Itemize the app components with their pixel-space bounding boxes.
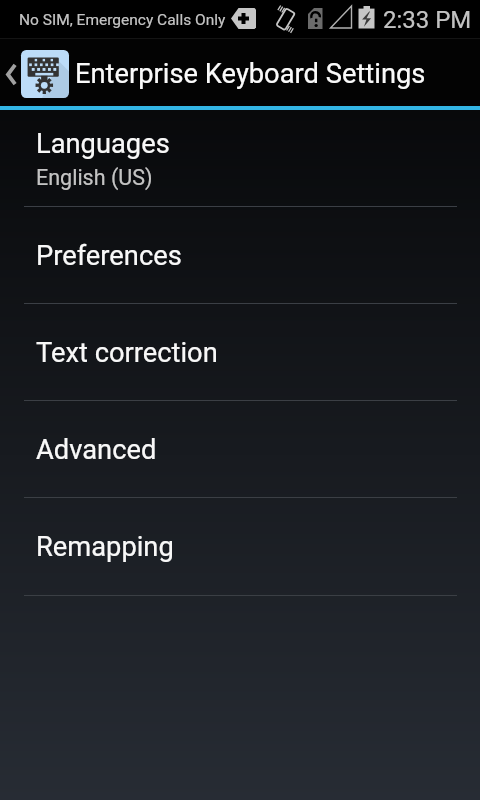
staticText: Advanced bbox=[36, 434, 157, 466]
staticText: Preferences bbox=[36, 240, 182, 272]
staticText: Enterprise Keyboard Settings bbox=[75, 58, 426, 90]
staticText: Text correction bbox=[36, 337, 218, 369]
button[interactable]: Remapping bbox=[0, 498, 480, 596]
button[interactable]: Text correction bbox=[0, 304, 480, 401]
button[interactable]: Preferences bbox=[0, 207, 480, 304]
staticText: Remapping bbox=[36, 531, 174, 563]
staticText: Languages bbox=[36, 128, 170, 160]
button[interactable]: Advanced bbox=[0, 401, 480, 498]
button[interactable]: Languages bbox=[0, 110, 480, 207]
button[interactable]: Navigate up bbox=[0, 38, 426, 110]
staticText: No SIM, Emergency Calls Only bbox=[19, 11, 226, 29]
staticText: 2:33 PM bbox=[383, 6, 472, 34]
staticText: English (US) bbox=[36, 165, 153, 190]
